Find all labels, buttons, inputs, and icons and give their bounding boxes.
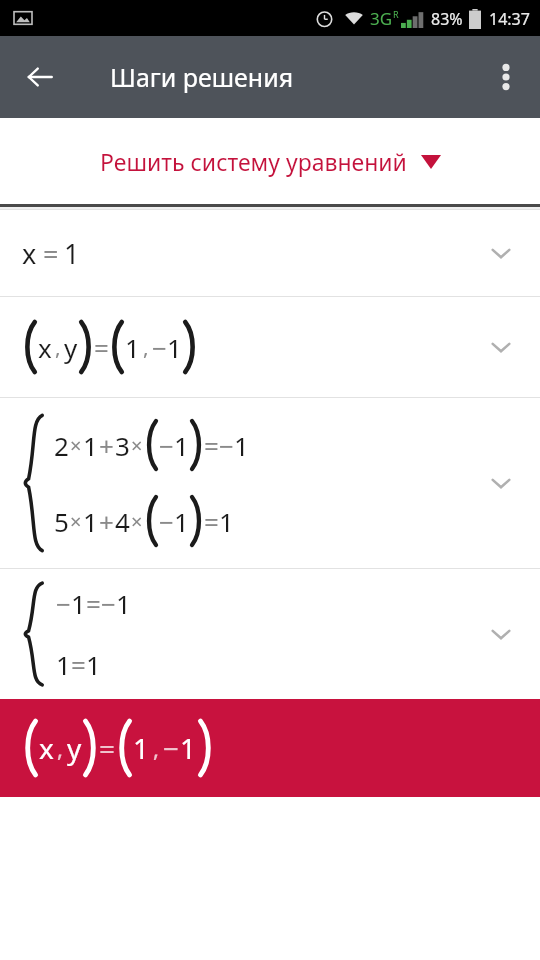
staticText: ×: [70, 432, 82, 459]
staticText: ,: [143, 333, 149, 361]
staticText: −: [219, 428, 234, 463]
staticText: x: [39, 729, 54, 767]
staticText: 1: [86, 647, 101, 682]
staticText: −: [159, 504, 174, 539]
staticText: =: [99, 729, 116, 767]
staticText: =: [94, 330, 109, 365]
staticText: ,: [153, 733, 160, 764]
staticText: 83%: [431, 8, 463, 30]
staticText: 1: [174, 504, 189, 539]
button[interactable]: Решить систему уравнений: [0, 118, 540, 204]
staticText: Решить систему уравнений: [100, 146, 407, 177]
staticText: −: [56, 586, 71, 621]
staticText: −: [152, 330, 167, 365]
staticText: y: [67, 729, 82, 767]
staticText: ,: [55, 333, 61, 361]
button[interactable]: −: [0, 569, 540, 699]
staticText: =: [86, 586, 101, 621]
staticText: ×: [70, 508, 82, 535]
staticText: −: [163, 729, 180, 767]
staticText: +: [99, 428, 114, 463]
staticText: 4: [115, 504, 130, 539]
staticText: 3: [115, 428, 130, 463]
staticText: =: [204, 504, 219, 539]
staticText: ×: [131, 508, 143, 535]
staticText: =: [204, 428, 219, 463]
staticText: 1: [83, 504, 98, 539]
staticText: 1: [167, 330, 182, 365]
staticText: −: [159, 428, 174, 463]
staticText: 3G: [370, 7, 393, 30]
staticText: 14:37: [489, 8, 530, 30]
staticText: 5: [54, 504, 69, 539]
staticText: 1: [71, 586, 86, 621]
button[interactable]: x: [0, 297, 540, 397]
staticText: R: [393, 8, 399, 20]
staticText: y: [64, 330, 78, 365]
staticText: 1: [83, 428, 98, 463]
staticText: x: [22, 235, 37, 272]
staticText: 1: [133, 729, 150, 767]
staticText: ×: [131, 432, 143, 459]
staticText: 1: [180, 729, 197, 767]
staticText: 1: [56, 647, 71, 682]
staticText: 1: [125, 330, 140, 365]
staticText: x: [38, 330, 52, 365]
staticText: 1: [174, 428, 189, 463]
staticText: 1: [116, 586, 131, 621]
staticText: =: [43, 235, 59, 272]
staticText: 2: [54, 428, 69, 463]
button[interactable]: Back: [16, 53, 64, 101]
staticText: 1: [234, 428, 249, 463]
staticText: 1: [219, 504, 234, 539]
button[interactable]: 2: [0, 398, 540, 568]
staticText: 1: [64, 235, 80, 272]
button[interactable]: x: [0, 699, 540, 797]
button[interactable]: More options: [482, 53, 530, 101]
staticText: +: [99, 504, 114, 539]
staticText: =: [71, 647, 86, 682]
button[interactable]: x: [0, 210, 540, 296]
staticText: ,: [57, 733, 64, 764]
staticText: Шаги решения: [110, 60, 294, 94]
staticText: −: [101, 586, 116, 621]
